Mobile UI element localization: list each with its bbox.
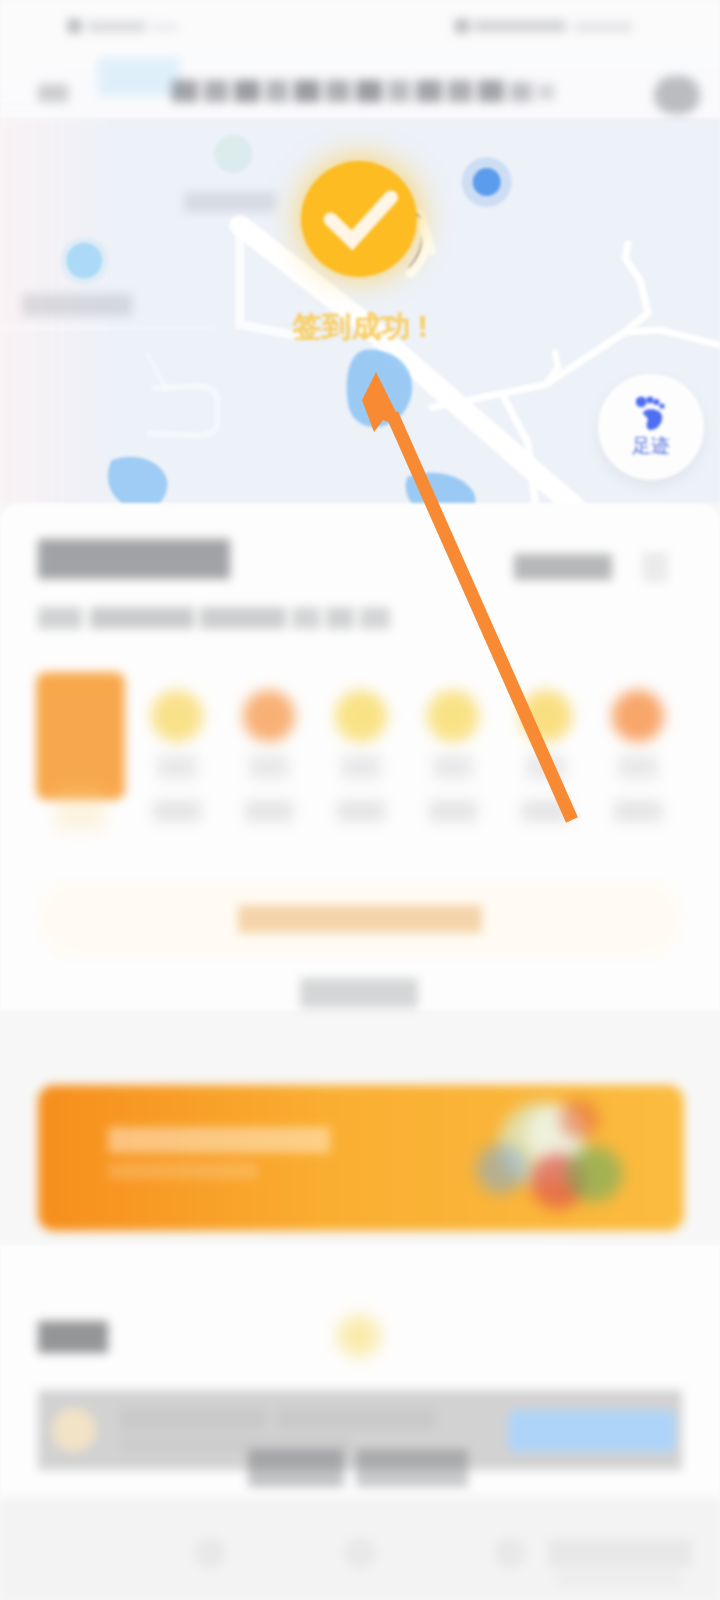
button[interactable]: 查看更多 More <box>280 969 438 1017</box>
button[interactable]: 足迹 Footprints <box>598 374 704 480</box>
button[interactable]: 签到日 Day <box>423 683 483 825</box>
button[interactable]: 签到日 Day <box>516 683 576 825</box>
button[interactable] <box>38 1390 682 1470</box>
staticText: 足迹 <box>632 434 670 458</box>
button[interactable]: 签到规则 Rules <box>508 545 684 589</box>
button[interactable]: 签到日 Day <box>608 683 668 825</box>
button[interactable]: 今日签到 Today <box>36 672 125 800</box>
button[interactable] <box>38 880 682 958</box>
staticText: 签到成功 ! <box>292 306 428 346</box>
button[interactable] <box>508 1410 676 1452</box>
button[interactable]: 签到日 Day <box>239 683 299 825</box>
button[interactable] <box>38 1085 684 1231</box>
button[interactable]: 签到日 Day <box>147 683 207 825</box>
button[interactable]: 签到日 Day <box>331 683 391 825</box>
